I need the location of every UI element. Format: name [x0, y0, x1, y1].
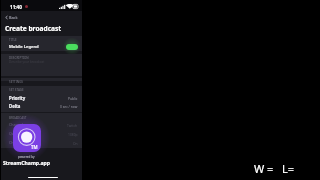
staticText: BROADCAST: [9, 116, 27, 120]
button[interactable]: Channel: [9, 120, 78, 129]
button[interactable]: Priority: [9, 93, 78, 102]
staticText: Channel: [9, 122, 24, 127]
staticText: Delta: [9, 103, 21, 109]
button[interactable]: Mobile Legend: [9, 42, 82, 51]
staticText: Create broadcast: [5, 24, 62, 33]
staticText: TM: [31, 144, 38, 150]
staticText: Back: [9, 15, 18, 20]
staticText: Public: [68, 96, 78, 100]
staticText: SET STAGE: [9, 88, 24, 92]
button[interactable]: Toggle visibility: [66, 44, 78, 50]
button[interactable]: StreamChamp logo: [13, 124, 41, 152]
staticText: TITLE: [9, 38, 17, 42]
staticText: 11:40: [10, 4, 22, 10]
staticText: Describe your broadcast: [9, 60, 45, 64]
button[interactable]: Chat: [9, 138, 78, 147]
staticText: Mobile Legend: [9, 44, 39, 50]
staticText: W = L=: [254, 161, 295, 176]
staticText: powered by: [18, 155, 35, 159]
staticText: 0 sec / now: [60, 104, 78, 108]
staticText: SETTINGS: [9, 80, 23, 84]
staticText: Priority: [9, 95, 26, 101]
staticText: 1080p: [68, 132, 78, 136]
staticText: On: [73, 141, 78, 145]
staticText: Quality: [9, 131, 22, 136]
other: Back: [4, 15, 9, 20]
button[interactable]: Delta: [9, 101, 78, 110]
staticText: DESCRIPTION: [9, 56, 29, 60]
staticText: Chat: [9, 140, 17, 145]
button[interactable]: Back: [4, 13, 18, 22]
staticText: StreamChamp.app: [3, 160, 50, 167]
staticText: Twitch: [67, 123, 78, 127]
button[interactable]: Quality: [9, 129, 78, 138]
